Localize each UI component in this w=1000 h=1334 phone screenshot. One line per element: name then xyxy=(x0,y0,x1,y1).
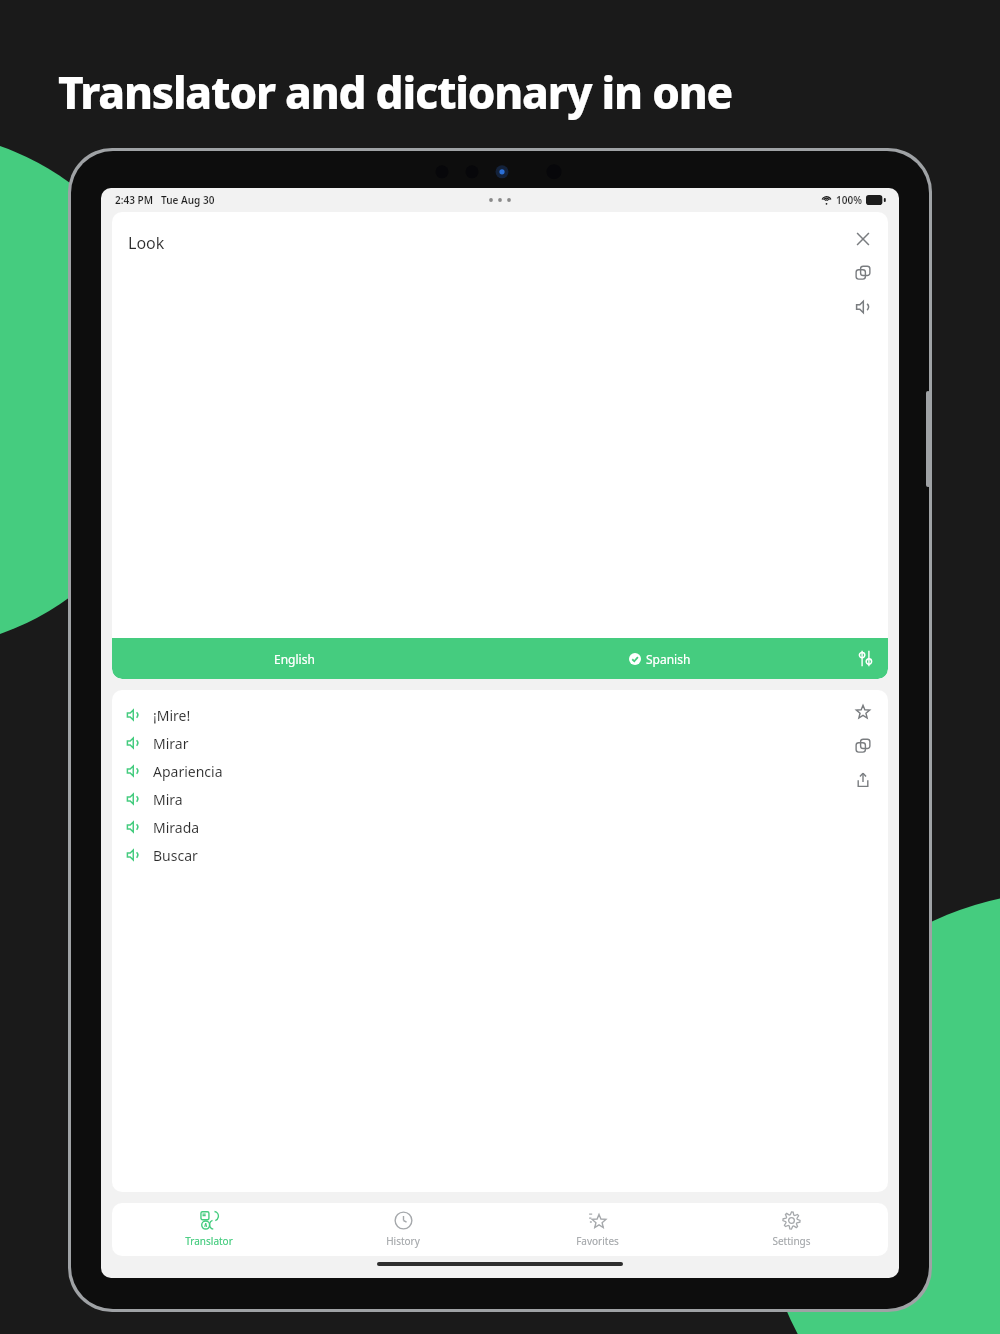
button[interactable]: ¡Mire! xyxy=(112,701,888,729)
staticText: Look xyxy=(128,232,165,254)
button[interactable]: Copy xyxy=(850,260,876,286)
staticText: Translator and dictionary in one xyxy=(58,62,732,122)
button[interactable]: English xyxy=(112,638,477,679)
staticText: English xyxy=(274,651,315,667)
button[interactable]: Copy xyxy=(850,733,876,759)
staticText: ¡Mire! xyxy=(153,706,191,725)
staticText: Translator xyxy=(185,1234,233,1248)
button[interactable]: Favorites xyxy=(500,1203,694,1256)
staticText: Spanish xyxy=(646,651,691,667)
button[interactable]: Mirada xyxy=(112,813,888,841)
staticText: Tue Aug 30 xyxy=(161,193,215,207)
staticText: 100% xyxy=(836,193,862,207)
staticText: Mirada xyxy=(153,818,200,837)
staticText: 2:43 PM xyxy=(115,193,153,207)
button[interactable]: Spanish xyxy=(477,638,842,679)
button[interactable]: Apariencia xyxy=(112,757,888,785)
button[interactable]: Share xyxy=(850,767,876,793)
button[interactable]: Language settings xyxy=(842,638,888,679)
button[interactable]: Speak xyxy=(850,294,876,320)
staticText: Mira xyxy=(153,790,183,809)
button[interactable]: Favorite xyxy=(850,699,876,725)
staticText: Mirar xyxy=(153,734,189,753)
button[interactable]: Settings xyxy=(694,1203,888,1256)
staticText: Favorites xyxy=(576,1234,619,1248)
staticText: Buscar xyxy=(153,846,198,865)
staticText: History xyxy=(386,1234,420,1248)
staticText: Settings xyxy=(772,1234,811,1248)
button[interactable]: Translator xyxy=(112,1203,306,1256)
button[interactable]: Mira xyxy=(112,785,888,813)
staticText: Apariencia xyxy=(153,762,223,781)
button[interactable]: History xyxy=(306,1203,500,1256)
button[interactable]: Buscar xyxy=(112,841,888,869)
button[interactable]: Mirar xyxy=(112,729,888,757)
button[interactable]: Close xyxy=(850,226,876,252)
